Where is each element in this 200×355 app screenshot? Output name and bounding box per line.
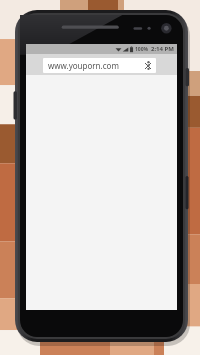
staticText: 100% [135,46,149,53]
button[interactable]: www.youporn.com [43,58,156,73]
button[interactable]: More options [142,56,155,74]
staticText: 2:14 PM [151,45,174,53]
button[interactable]: Clear address [142,60,154,72]
staticText: www.youporn.com [48,60,119,71]
